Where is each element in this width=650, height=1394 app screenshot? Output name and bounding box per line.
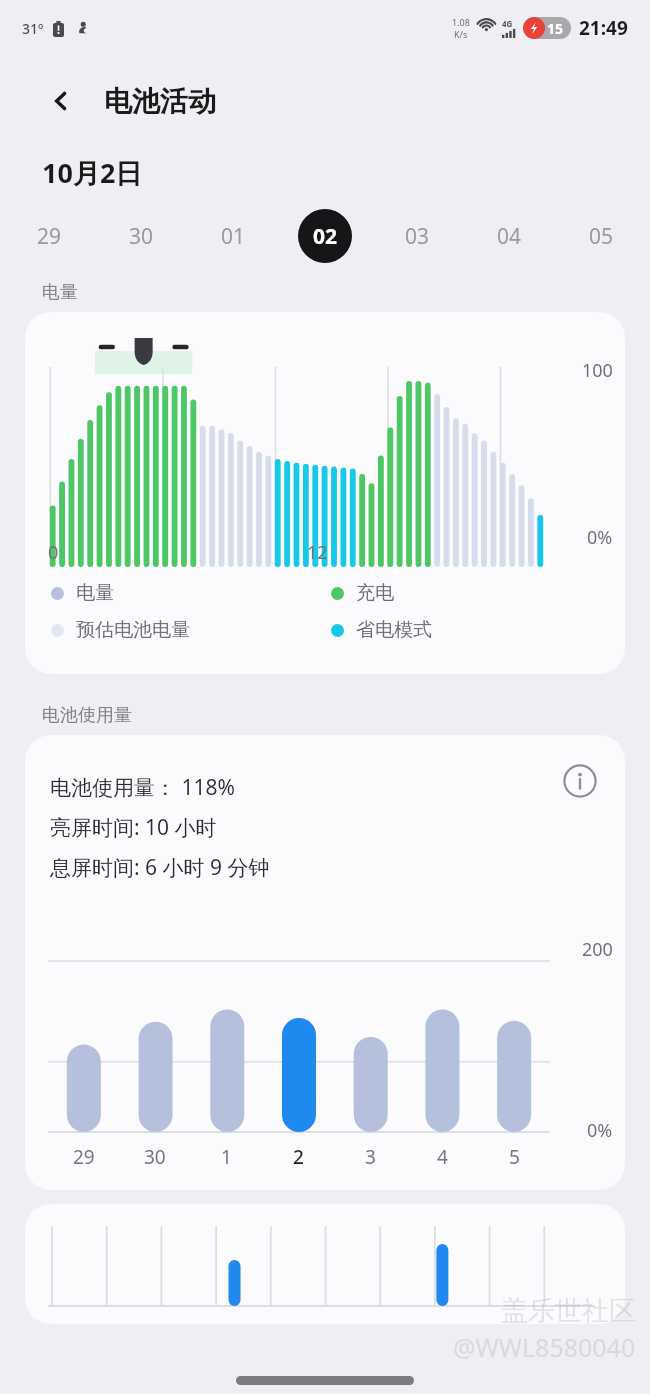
staticText: 03 (405, 222, 430, 251)
staticText: 电池使用量 (42, 704, 132, 727)
button[interactable]: 02 (298, 209, 352, 263)
staticText: 0 (48, 540, 59, 565)
staticText: 电量 (42, 281, 78, 304)
staticText: 12 (307, 540, 328, 565)
staticText: K/s (454, 28, 468, 40)
staticText: 1.08 (452, 16, 470, 28)
staticText: 盖乐世社区 (501, 1294, 636, 1328)
staticText: 息屏时间: 6 小时 9 分钟 (50, 853, 270, 882)
button[interactable]: Back (40, 80, 82, 122)
staticText: 01 (221, 222, 246, 251)
staticText: 100 (582, 358, 613, 383)
staticText: 电池活动 (104, 84, 216, 119)
button[interactable]: 04 (482, 209, 536, 263)
staticText: 02 (313, 222, 338, 251)
staticText: 10月2日 (42, 154, 143, 191)
staticText: 30 (144, 1144, 166, 1170)
staticText: 29 (37, 222, 62, 251)
staticText: 3 (365, 1144, 376, 1170)
staticText: 省电模式 (356, 618, 432, 642)
staticText: 05 (589, 222, 614, 251)
staticText: 电量 (76, 581, 114, 605)
button[interactable]: 30 (114, 209, 168, 263)
staticText: 亮屏时间: 10 小时 (50, 813, 217, 842)
button[interactable]: 03 (390, 209, 444, 263)
staticText: 04 (497, 222, 522, 251)
staticText: 电池使用量： 118% (50, 773, 235, 802)
staticText: 4 (437, 1144, 448, 1170)
staticText: 21:49 (579, 15, 628, 41)
staticText: 充电 (356, 581, 394, 605)
staticText: 1 (221, 1144, 232, 1170)
staticText: 200 (582, 937, 613, 962)
staticText: 31º (22, 19, 44, 38)
staticText: 预估电池电量 (76, 618, 190, 642)
staticText: @WWL8580040 (453, 1330, 636, 1364)
staticText: 30 (129, 222, 154, 251)
button[interactable]: 05 (574, 209, 628, 263)
staticText: 15 (547, 19, 564, 38)
button[interactable]: 01 (206, 209, 260, 263)
staticText: 2 (293, 1144, 304, 1170)
staticText: 0% (587, 525, 613, 550)
staticText: 4G (502, 18, 513, 29)
staticText: 5 (509, 1144, 520, 1170)
button[interactable]: 29 (22, 209, 76, 263)
staticText: 0% (587, 1118, 613, 1143)
button[interactable]: Info (560, 761, 600, 801)
staticText: 29 (73, 1144, 95, 1170)
